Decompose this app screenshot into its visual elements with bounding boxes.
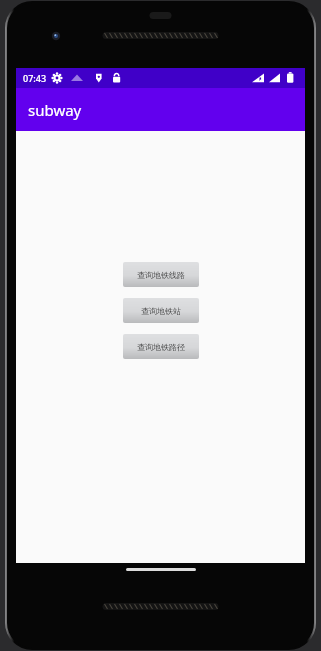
staticText: subway: [28, 100, 82, 120]
staticText: 查询地铁站: [141, 306, 181, 316]
staticText: 查询地铁线路: [137, 270, 185, 280]
button[interactable]: 查询地铁路径: [123, 334, 199, 359]
staticText: 07:43: [23, 72, 47, 84]
button[interactable]: 查询地铁线路: [123, 262, 199, 287]
button[interactable]: 查询地铁站: [123, 298, 199, 323]
staticText: 查询地铁路径: [137, 342, 185, 352]
